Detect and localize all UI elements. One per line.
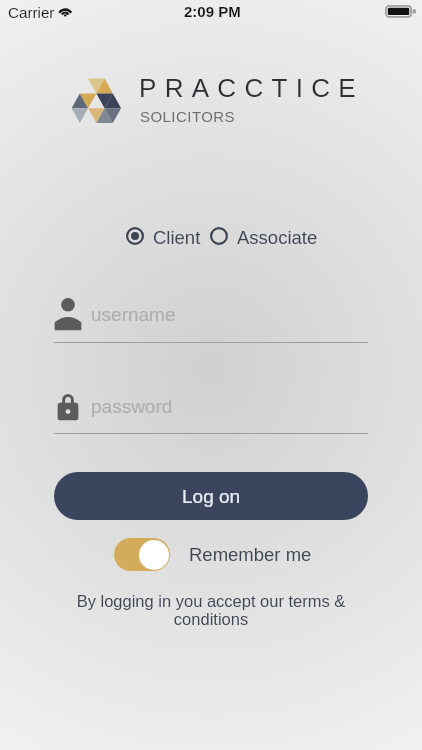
staticText: Associate [237, 227, 318, 247]
staticText: password [91, 396, 173, 417]
staticText: Remember me [189, 544, 312, 565]
staticText: SOLICITORS [140, 108, 236, 125]
staticText: 2:09 PM [184, 3, 241, 20]
button[interactable]: Remember me [114, 538, 170, 571]
staticText: Log on [182, 486, 241, 507]
button[interactable]: Client [126, 227, 201, 247]
button[interactable]: Associate [210, 227, 318, 247]
staticText: Client [153, 227, 201, 247]
button[interactable]: Log on [54, 472, 368, 520]
staticText: PRACCTICE [139, 73, 364, 102]
button[interactable]: By logging in you accept our terms & con… [56, 592, 366, 629]
staticText: By logging in you accept our terms & con… [56, 592, 366, 629]
staticText: Carrier [8, 4, 55, 21]
button[interactable]: password [53, 388, 368, 434]
staticText: username [91, 304, 176, 325]
button[interactable]: username [53, 296, 368, 344]
